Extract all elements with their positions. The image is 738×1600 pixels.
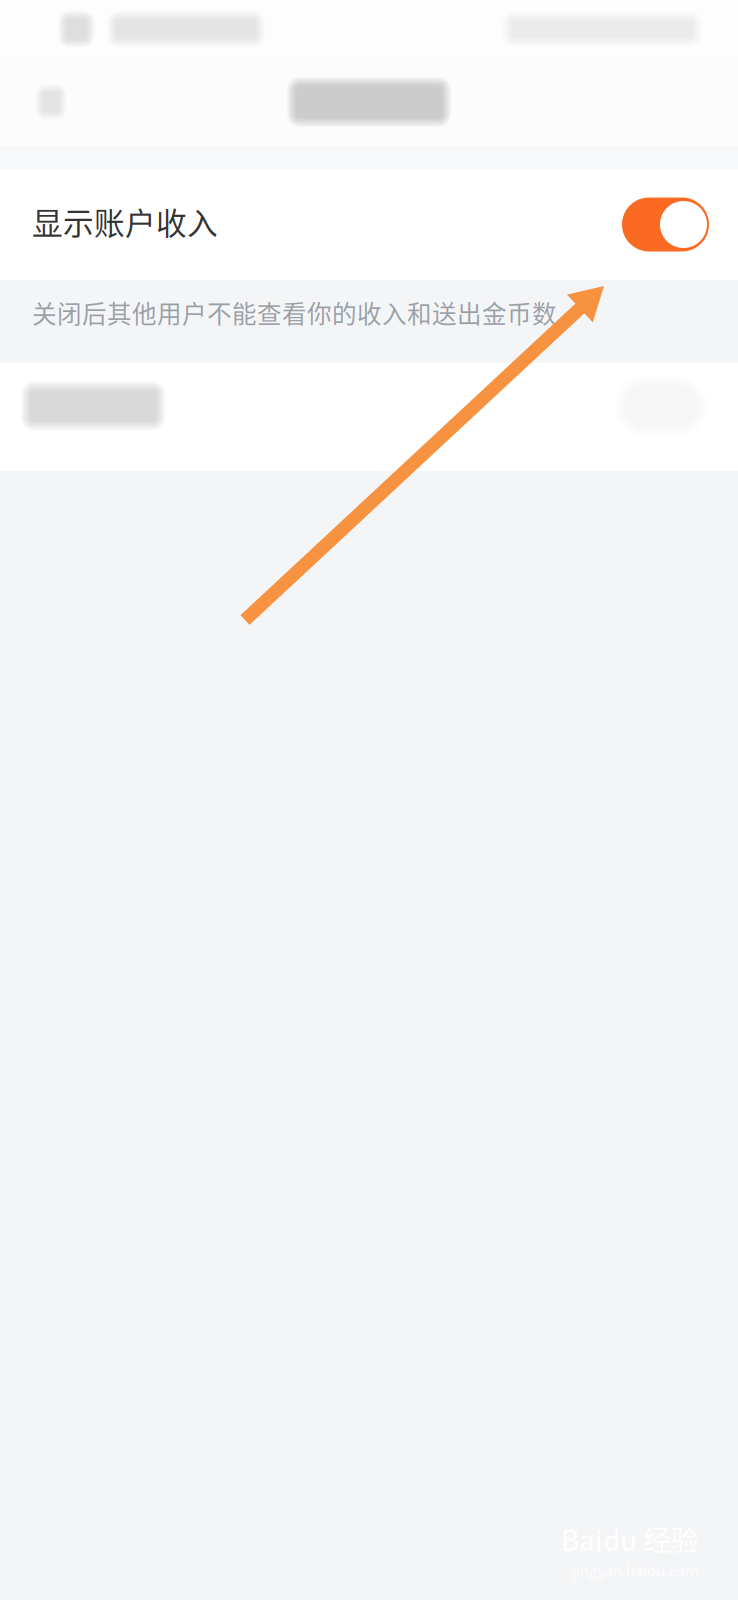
button[interactable]: Back xyxy=(16,63,86,141)
staticText: Baidu 经验 xyxy=(561,1518,699,1559)
button[interactable] xyxy=(0,363,738,471)
staticText: 显示账户收入 xyxy=(32,199,218,244)
staticText: 关闭后其他用户不能查看你的收入和送出金币数 xyxy=(32,295,557,330)
button[interactable]: 显示账户收入 xyxy=(0,169,738,280)
